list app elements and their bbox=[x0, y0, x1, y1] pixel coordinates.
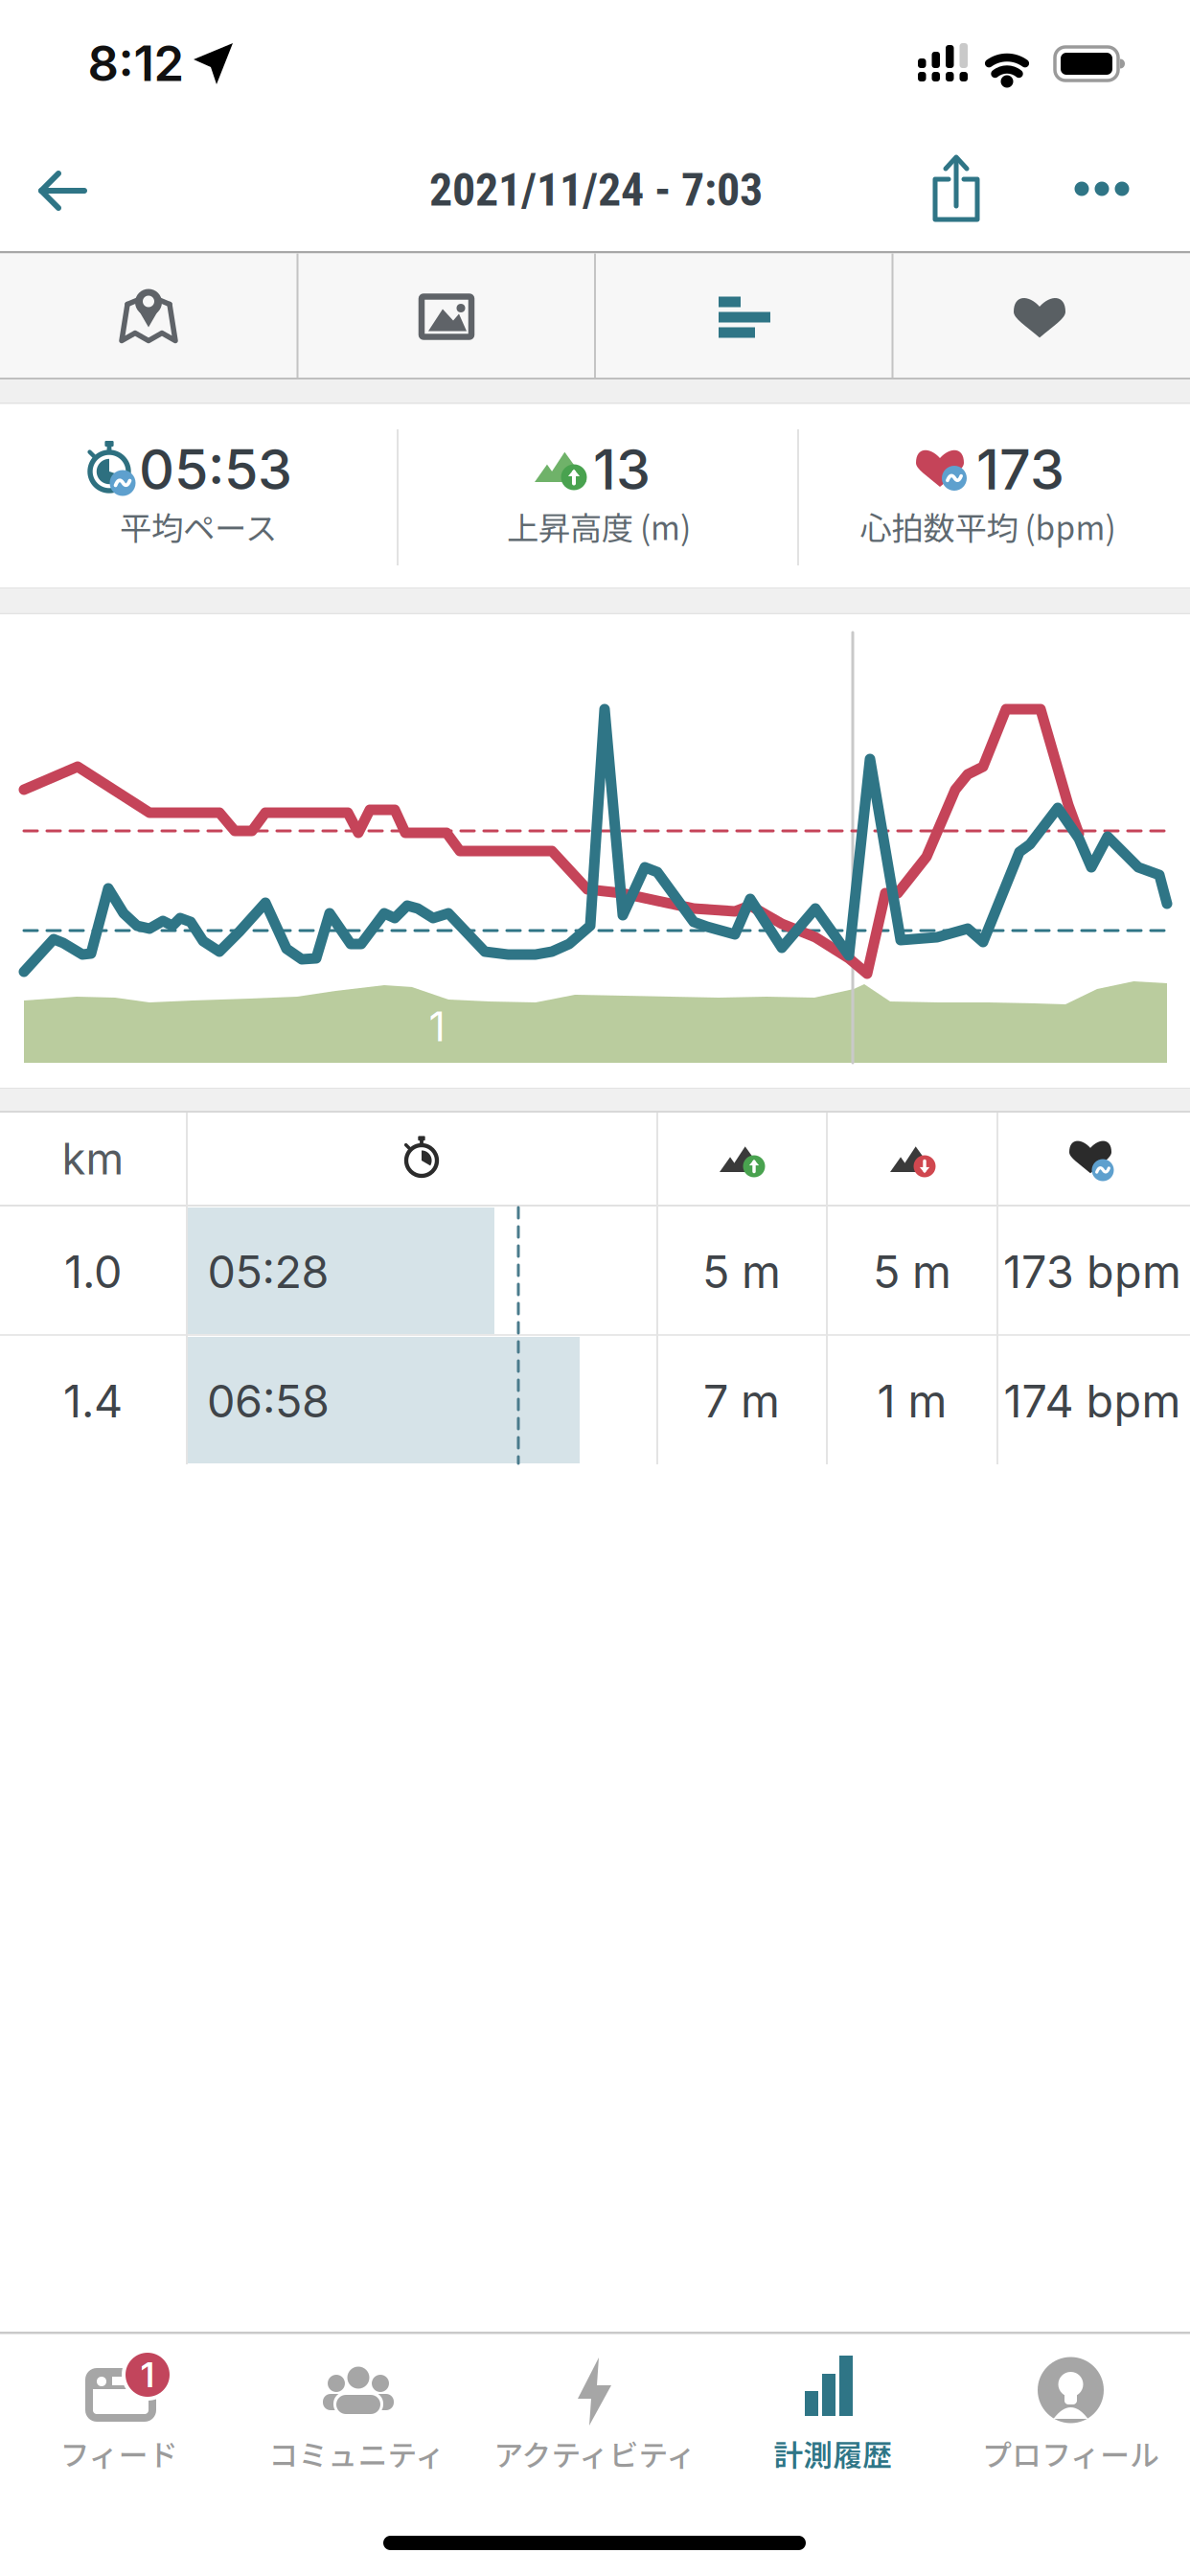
staticText: フィード bbox=[60, 2432, 178, 2475]
button[interactable]: Back bbox=[30, 157, 97, 224]
staticText: 173 bbox=[976, 436, 1064, 503]
button[interactable]: More bbox=[1064, 168, 1140, 210]
staticText: アクティビティ bbox=[494, 2432, 696, 2475]
staticText: km bbox=[62, 1132, 124, 1185]
staticText: 8:12 bbox=[88, 34, 184, 93]
button[interactable]: Share bbox=[923, 147, 990, 229]
staticText: 5 m bbox=[873, 1245, 951, 1299]
staticText: 174 bpm bbox=[1004, 1374, 1181, 1428]
staticText: 1.4 bbox=[63, 1374, 123, 1428]
button[interactable]: コミュニティ bbox=[238, 2334, 476, 2492]
button[interactable]: Heart rate bbox=[892, 253, 1190, 378]
staticText: プロフィール bbox=[982, 2432, 1160, 2475]
staticText: 173 bpm bbox=[1003, 1245, 1181, 1299]
button[interactable]: 1 bbox=[0, 2334, 238, 2492]
staticText: 1 bbox=[429, 1002, 445, 1051]
staticText: 心拍数平均 (bpm) bbox=[860, 503, 1116, 549]
staticText: 1 bbox=[141, 2354, 154, 2396]
staticText: 1 m bbox=[877, 1374, 947, 1428]
staticText: 06:58 bbox=[207, 1374, 330, 1428]
button[interactable]: Splits bbox=[595, 253, 892, 378]
staticText: 上昇高度 (m) bbox=[507, 503, 691, 549]
button[interactable]: 計測履歴 bbox=[714, 2334, 952, 2492]
staticText: コミュニティ bbox=[269, 2432, 445, 2475]
button[interactable]: プロフィール bbox=[952, 2334, 1190, 2492]
button[interactable]: アクティビティ bbox=[476, 2334, 714, 2492]
staticText: 計測履歴 bbox=[774, 2432, 892, 2475]
staticText: 13 bbox=[593, 436, 651, 503]
staticText: 平均ペース bbox=[120, 503, 277, 549]
button[interactable]: Map bbox=[0, 253, 297, 378]
staticText: 05:53 bbox=[139, 436, 292, 503]
staticText: 5 m bbox=[702, 1245, 781, 1299]
staticText: 1.0 bbox=[64, 1245, 122, 1299]
button[interactable]: Stats photo bbox=[297, 253, 595, 378]
staticText: 2021/11/24 - 7:03 bbox=[429, 163, 763, 217]
staticText: 05:28 bbox=[207, 1245, 329, 1299]
staticText: 7 m bbox=[703, 1374, 780, 1428]
